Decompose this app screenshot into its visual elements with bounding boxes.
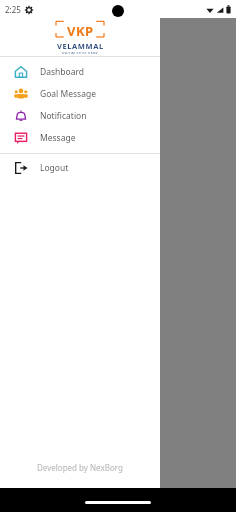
button[interactable]: Logout (0, 157, 160, 179)
button[interactable]: Notification (0, 105, 160, 127)
staticText: VKP (67, 22, 94, 40)
button[interactable]: Goal Message (0, 83, 160, 105)
staticText: Developed by NexBorg (37, 462, 123, 473)
other: Notification (14, 109, 28, 123)
staticText: VELAMMAL (57, 41, 104, 51)
button[interactable]: Message (0, 127, 160, 149)
other: Logout (14, 161, 28, 175)
other: Message (14, 131, 28, 145)
staticText: kkal - CBSE (152, 129, 199, 141)
button[interactable]: Dashboard (0, 61, 160, 83)
staticText: Goal Message (40, 88, 96, 100)
staticText: KNOWLEDGE PARK (62, 51, 99, 54)
staticText: Logout (40, 162, 69, 174)
staticText: Dashboard (40, 66, 85, 78)
staticText: Message (40, 132, 76, 144)
staticText: 2:25 (5, 4, 21, 15)
staticText: Notification (40, 110, 87, 122)
other: Goal Message (14, 87, 28, 101)
other: Dashboard (14, 65, 28, 79)
